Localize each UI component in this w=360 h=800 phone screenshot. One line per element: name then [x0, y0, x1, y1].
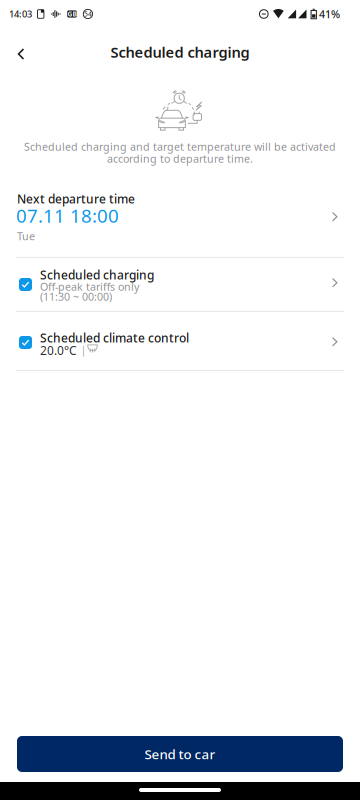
staticText: GB	[67, 10, 76, 18]
staticText: Scheduled charging	[40, 267, 154, 283]
staticText: according to departure time.	[107, 151, 253, 166]
staticText: Off-peak tariffs only	[40, 279, 139, 294]
staticText: |	[80, 342, 86, 357]
staticText: 41%	[319, 7, 340, 21]
button[interactable]: Send to car	[17, 736, 343, 772]
staticText: Send to car	[144, 745, 215, 763]
staticText: Scheduled charging and target temperatur…	[24, 139, 336, 154]
button[interactable]: Back	[2, 37, 40, 71]
staticText: 14:03	[9, 8, 32, 20]
button[interactable]: Scheduled charging	[16, 257, 344, 311]
staticText: (11:30 ~ 00:00)	[40, 289, 112, 304]
staticText: Tue	[17, 229, 35, 243]
staticText: 20.0°C	[40, 342, 77, 358]
staticText: Scheduled charging	[110, 42, 249, 62]
staticText: Next departure time	[17, 191, 135, 207]
staticText: Scheduled climate control	[40, 330, 189, 346]
staticText: 07.11 18:00	[16, 203, 119, 228]
staticText: 54	[84, 10, 92, 18]
button[interactable]: Scheduled climate control	[16, 311, 344, 370]
button[interactable]: Next departure time	[17, 191, 343, 255]
